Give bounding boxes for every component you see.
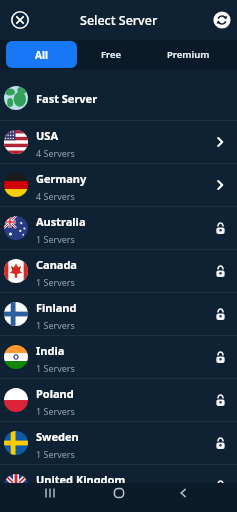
staticText: India xyxy=(36,343,65,358)
staticText: USA xyxy=(36,128,58,143)
button[interactable]: Free xyxy=(77,41,146,68)
staticText: 1 Servers xyxy=(36,276,75,288)
staticText: 1 Servers xyxy=(36,405,75,417)
staticText: Australia xyxy=(36,214,86,229)
button[interactable]: USA xyxy=(0,120,237,163)
button[interactable] xyxy=(173,483,193,503)
button[interactable]: Germany xyxy=(0,163,237,206)
button[interactable]: All xyxy=(6,41,77,68)
staticText: Select Server xyxy=(80,12,158,29)
button[interactable]: India xyxy=(0,335,237,378)
staticText: Sweden xyxy=(36,429,79,444)
staticText: Canada xyxy=(36,257,77,272)
staticText: All xyxy=(35,48,48,62)
button[interactable]: United Kingdom xyxy=(0,464,237,507)
button[interactable] xyxy=(212,10,232,30)
staticText: 4 Servers xyxy=(36,190,75,202)
staticText: 1 Servers xyxy=(36,362,75,374)
staticText: Fast Server xyxy=(36,91,98,106)
button[interactable]: Canada xyxy=(0,249,237,292)
button[interactable]: Australia xyxy=(0,206,237,249)
staticText: 1 Servers xyxy=(36,319,75,331)
staticText: 4 Servers xyxy=(36,147,75,159)
staticText: Premium xyxy=(167,48,210,61)
staticText: Poland xyxy=(36,386,74,401)
button[interactable]: Fast Server xyxy=(0,76,237,120)
staticText: Finland xyxy=(36,300,77,315)
button[interactable]: Poland xyxy=(0,378,237,421)
staticText: 1 Servers xyxy=(36,491,75,503)
button[interactable]: Premium xyxy=(146,41,231,68)
staticText: United Kingdom xyxy=(36,472,126,487)
staticText: 1 Servers xyxy=(36,448,75,460)
staticText: 1 Servers xyxy=(36,233,75,245)
staticText: Free xyxy=(101,48,122,61)
button[interactable] xyxy=(109,483,129,503)
button[interactable]: Finland xyxy=(0,292,237,335)
button[interactable]: Sweden xyxy=(0,421,237,464)
staticText: Germany xyxy=(36,171,87,186)
button[interactable] xyxy=(10,10,30,30)
button[interactable] xyxy=(40,483,60,503)
